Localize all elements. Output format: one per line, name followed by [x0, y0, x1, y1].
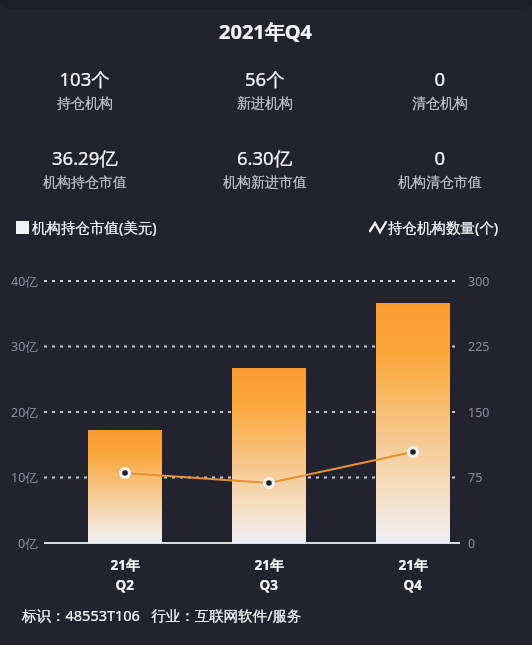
button[interactable]: 2021年Q4 机构持仓图表 — [0, 0, 532, 645]
